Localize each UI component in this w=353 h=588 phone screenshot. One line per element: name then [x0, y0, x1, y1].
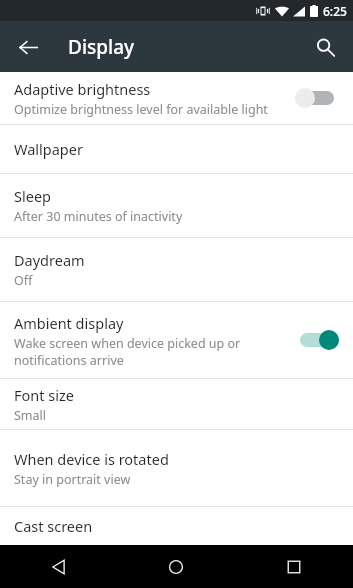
button[interactable]: Cast screen — [0, 507, 353, 545]
button[interactable]: Toggle on — [295, 328, 339, 352]
staticText: Ambient display — [14, 313, 124, 333]
staticText: When device is rotated — [14, 449, 169, 469]
staticText: Wallpaper — [14, 139, 83, 159]
button[interactable]: Search — [305, 27, 345, 67]
button[interactable]: Font size — [0, 379, 353, 429]
button[interactable]: Daydream — [0, 238, 353, 301]
staticText: After 30 minutes of inactivity — [14, 208, 183, 225]
button[interactable]: Wallpaper — [0, 125, 353, 173]
button[interactable]: Sleep — [0, 174, 353, 237]
button[interactable]: Home — [117, 545, 235, 588]
staticText: Wake screen when device picked up or not… — [14, 335, 285, 368]
button[interactable]: When device is rotated — [0, 430, 353, 506]
button[interactable]: Adaptive brightness — [0, 72, 353, 124]
staticText: Adaptive brightness — [14, 79, 151, 99]
button[interactable]: Back — [8, 27, 48, 67]
staticText: Sleep — [14, 186, 51, 206]
button[interactable]: Ambient display — [0, 302, 353, 378]
staticText: Stay in portrait view — [14, 471, 131, 488]
staticText: Optimize brightness level for available … — [14, 101, 268, 118]
staticText: Display — [68, 34, 135, 60]
staticText: Font size — [14, 385, 74, 405]
staticText: Daydream — [14, 250, 85, 270]
staticText: Cast screen — [14, 516, 93, 536]
staticText: 6:25 — [323, 3, 347, 19]
button[interactable]: Recents — [235, 545, 353, 588]
staticText: Off — [14, 272, 33, 289]
button[interactable]: Toggle off — [295, 86, 339, 110]
staticText: Small — [14, 407, 47, 424]
button[interactable]: Back — [0, 545, 117, 588]
